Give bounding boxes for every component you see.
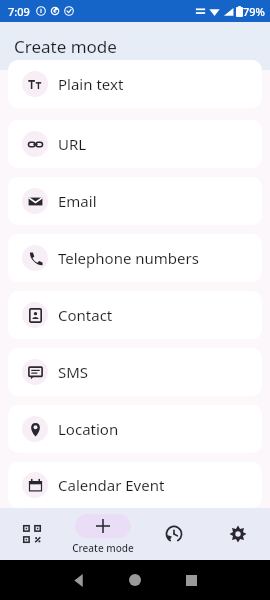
staticText: Plain text xyxy=(58,74,124,94)
staticText: Email xyxy=(58,191,97,211)
button[interactable]: Home xyxy=(107,560,163,600)
button[interactable]: Contact xyxy=(8,291,262,339)
staticText: Location xyxy=(58,419,119,439)
button[interactable]: Email xyxy=(8,177,262,225)
staticText: SMS xyxy=(58,362,89,382)
button[interactable]: URL xyxy=(8,120,262,168)
button[interactable]: Settings xyxy=(206,508,270,560)
staticText: Telephone numbers xyxy=(58,248,199,268)
button[interactable]: Plain text xyxy=(8,60,262,108)
button[interactable]: Scan xyxy=(0,508,63,560)
button[interactable]: Create mode xyxy=(63,508,142,560)
button[interactable]: Calendar Event xyxy=(8,462,262,508)
button[interactable]: History xyxy=(142,508,206,560)
staticText: Create mode xyxy=(72,541,134,555)
button[interactable]: Location xyxy=(8,405,262,453)
button[interactable]: Back xyxy=(51,560,107,600)
staticText: Contact xyxy=(58,305,113,325)
button[interactable]: Recents xyxy=(163,560,219,600)
button[interactable]: Telephone numbers xyxy=(8,234,262,282)
staticText: Create mode xyxy=(14,35,117,58)
button[interactable]: SMS xyxy=(8,348,262,396)
staticText: 79% xyxy=(243,4,265,19)
staticText: URL xyxy=(58,134,87,154)
staticText: Calendar Event xyxy=(58,475,165,495)
staticText: 7:09 xyxy=(8,4,30,19)
